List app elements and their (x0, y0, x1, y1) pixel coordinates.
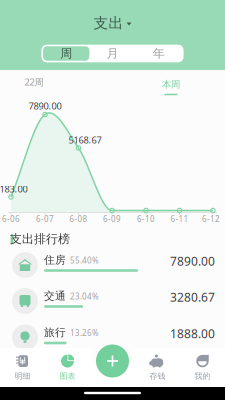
staticText: 6-09 (103, 214, 121, 224)
button[interactable]: 旅行 (0, 320, 225, 354)
button[interactable]: 存钱 (135, 348, 180, 387)
staticText: 6-06 (2, 214, 20, 224)
staticText: 13.26% (70, 328, 99, 338)
staticText: 22周 (24, 76, 43, 88)
button[interactable]: Add (96, 344, 129, 377)
staticText: 1183.00 (0, 183, 27, 195)
staticText: 支出 (93, 14, 123, 32)
staticText: 住房 (44, 253, 66, 266)
staticText: 交通 (44, 289, 66, 302)
staticText: 旅行 (44, 326, 66, 339)
button[interactable]: 周 (43, 46, 89, 61)
staticText: 55.40% (70, 255, 99, 266)
staticText: 我的 (194, 371, 210, 381)
button[interactable]: 住房 (0, 248, 225, 282)
staticText: 7890.00 (28, 100, 61, 112)
staticText: 6-10 (137, 214, 155, 224)
staticText: 5168.67 (68, 134, 101, 146)
staticText: 月 (106, 46, 118, 61)
staticText: 1888.00 (170, 325, 215, 341)
staticText: 明细 (14, 371, 30, 381)
staticText: 6-11 (170, 214, 188, 224)
staticText: 6-08 (69, 214, 87, 224)
button[interactable]: 年 (136, 46, 182, 61)
staticText: 周 (60, 46, 72, 61)
button[interactable]: 明细 (0, 348, 45, 387)
staticText: 3280.67 (170, 289, 215, 305)
button[interactable]: 支出 (87, 11, 137, 35)
button[interactable]: 月 (89, 46, 136, 61)
staticText: 7890.00 (170, 253, 215, 269)
staticText: 23.04% (70, 291, 99, 302)
staticText: 存钱 (149, 371, 165, 381)
staticText: 本周 (162, 79, 180, 90)
staticText: 图表 (59, 371, 75, 381)
button[interactable]: 交通 (0, 284, 225, 318)
staticText: 支出排行榜 (10, 232, 70, 246)
button[interactable]: 图表 (45, 348, 90, 387)
staticText: 6-07 (36, 214, 54, 224)
staticText: 6-12 (202, 214, 220, 224)
button[interactable]: 我的 (180, 348, 225, 387)
staticText: 年 (153, 46, 165, 61)
